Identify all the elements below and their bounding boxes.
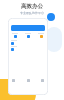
button[interactable]: Tab	[12, 79, 15, 82]
button[interactable]: List item	[11, 46, 48, 51]
button[interactable]: Shortcut	[23, 33, 33, 38]
staticText: 高效办公	[21, 3, 43, 10]
staticText: 专业团队协作平台	[20, 11, 44, 15]
button[interactable]: Tab	[41, 79, 44, 82]
button[interactable]: Accent	[47, 13, 55, 21]
button[interactable]: List item	[11, 40, 48, 45]
button[interactable]: Tab	[27, 79, 30, 82]
button[interactable]: Shortcut	[36, 33, 46, 38]
button[interactable]: Shortcut	[10, 33, 20, 38]
button[interactable]: Search	[11, 25, 45, 31]
